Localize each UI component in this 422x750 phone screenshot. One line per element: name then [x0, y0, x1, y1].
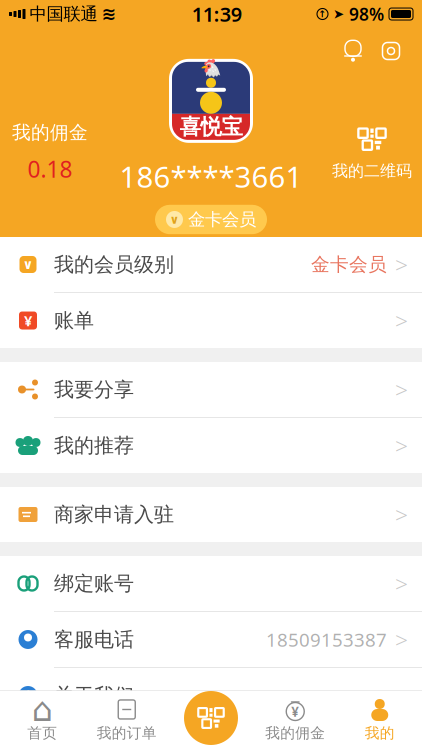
staticText: 我的订单 — [97, 724, 157, 742]
button[interactable]: 商家申请入驻 — [0, 487, 422, 542]
button[interactable]: ⌂ — [0, 691, 84, 749]
staticText: ¥ — [24, 311, 32, 330]
staticText: > — [395, 499, 408, 529]
button[interactable]: 我要分享 — [0, 362, 422, 418]
staticText: > — [395, 430, 408, 460]
button[interactable]: Notifications — [334, 34, 372, 68]
button[interactable]: ∨ — [155, 205, 267, 234]
staticText: 喜悦宝 — [179, 114, 242, 140]
staticText: 186****3661 — [119, 157, 302, 196]
staticText: 金卡会员 — [311, 253, 387, 276]
staticText: > — [395, 305, 408, 335]
staticText: 0.18 — [27, 154, 72, 184]
staticText: 我的佣金 — [265, 724, 325, 742]
staticText: ∨ — [169, 213, 179, 226]
staticText: 我的 — [365, 724, 395, 742]
staticText: > — [395, 624, 408, 654]
button[interactable]: Settings — [372, 34, 410, 68]
staticText: ≋ — [101, 4, 116, 24]
staticText: 11:39 — [192, 1, 242, 27]
staticText: 我要分享 — [54, 377, 134, 402]
button[interactable]: 我的二维码 — [322, 124, 422, 181]
staticText: 我的推荐 — [54, 433, 134, 458]
staticText: 中国联通 — [29, 3, 97, 25]
button[interactable]: 我的 — [337, 691, 422, 749]
staticText: 金卡会员 — [188, 209, 256, 230]
staticText: ↑ — [318, 9, 326, 19]
staticText: 关于我们 — [54, 683, 134, 708]
staticText: > — [395, 680, 408, 710]
button[interactable]: i — [0, 668, 422, 723]
staticText: ➤ — [333, 6, 344, 21]
staticText: 🐔 — [200, 58, 222, 78]
staticText: 我的二维码 — [332, 161, 412, 181]
button[interactable]: ¥ — [253, 691, 337, 749]
staticText: 客服电话 — [54, 627, 134, 652]
staticText: ∨ — [22, 257, 33, 272]
staticText: > — [395, 374, 408, 404]
staticText: > — [395, 249, 408, 279]
button[interactable]: 扫一扫 — [180, 687, 242, 749]
staticText: 首页 — [27, 724, 57, 742]
staticText: 我的会员级别 — [54, 252, 174, 277]
staticText: 账单 — [54, 308, 94, 333]
staticText: 绑定账号 — [54, 571, 134, 596]
button[interactable]: ∨ — [0, 237, 422, 293]
button[interactable]: 我的佣金 — [0, 121, 100, 184]
button[interactable]: 绑定账号 — [0, 556, 422, 612]
staticText: 我的佣金 — [12, 121, 88, 144]
staticText: 18509153387 — [266, 627, 387, 652]
button[interactable]: 我的订单 — [84, 691, 169, 749]
button[interactable]: 我的推荐 — [0, 418, 422, 473]
staticText: > — [395, 568, 408, 598]
staticText: i — [26, 686, 30, 705]
staticText: 98% — [349, 2, 384, 25]
button[interactable]: ¥ — [0, 293, 422, 348]
staticText: ¥ — [291, 703, 299, 720]
staticText: ⌂ — [32, 691, 53, 728]
button[interactable]: 客服电话 — [0, 612, 422, 668]
staticText: 商家申请入驻 — [54, 502, 174, 527]
